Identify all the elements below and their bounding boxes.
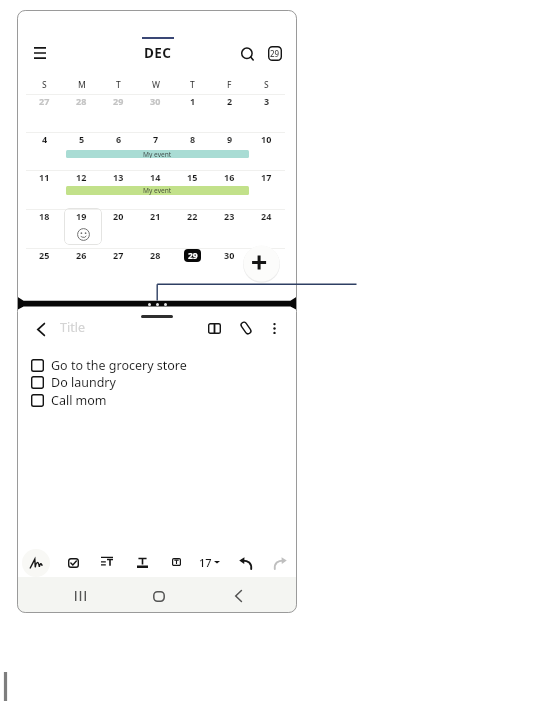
- staticText: 27: [113, 249, 124, 261]
- button[interactable]: My event: [66, 150, 249, 158]
- button[interactable]: Reading view: [201, 315, 227, 341]
- staticText: 30: [150, 95, 161, 107]
- button[interactable]: 4: [26, 131, 63, 147]
- button[interactable]: 26: [63, 247, 100, 263]
- button[interactable]: Go to today: [262, 40, 288, 66]
- staticText: 25: [39, 249, 50, 261]
- button[interactable]: 6: [100, 131, 137, 147]
- button[interactable]: 23: [211, 208, 248, 224]
- button[interactable]: Call mom: [31, 391, 107, 409]
- button[interactable]: Text box: [164, 550, 188, 574]
- staticText: M: [78, 79, 86, 91]
- button[interactable]: Redo: [268, 551, 292, 575]
- button[interactable]: Go to the grocery store: [31, 356, 187, 374]
- button[interactable]: More options: [263, 317, 285, 339]
- staticText: 21: [150, 210, 161, 222]
- staticText: My event: [143, 186, 172, 195]
- button[interactable]: 20: [100, 208, 137, 224]
- button[interactable]: 12: [63, 169, 100, 185]
- staticText: 8: [190, 133, 196, 145]
- staticText: T: [116, 79, 121, 91]
- button[interactable]: Do laundry: [31, 373, 116, 391]
- staticText: 29: [270, 48, 280, 59]
- staticText: Do laundry: [51, 374, 116, 391]
- staticText: 24: [261, 210, 272, 222]
- staticText: 29: [113, 95, 124, 107]
- staticText: 15: [187, 171, 198, 183]
- staticText: 3: [264, 95, 270, 107]
- staticText: 20: [113, 210, 124, 222]
- button[interactable]: 5: [63, 131, 100, 147]
- button[interactable]: 27: [100, 247, 137, 263]
- button[interactable]: Undo: [233, 551, 257, 575]
- button[interactable]: Menu: [25, 38, 55, 68]
- staticText: 2: [227, 95, 233, 107]
- button[interactable]: [64, 208, 102, 245]
- button[interactable]: Back: [223, 581, 253, 611]
- button[interactable]: 28: [63, 93, 100, 109]
- staticText: 29: [188, 250, 198, 262]
- staticText: 18: [39, 210, 50, 222]
- button[interactable]: 28: [137, 247, 174, 263]
- button[interactable]: Text style: [130, 550, 154, 574]
- button[interactable]: 11: [26, 169, 63, 185]
- button[interactable]: 13: [100, 169, 137, 185]
- button[interactable]: Pen: [22, 549, 50, 577]
- staticText: 17: [261, 171, 272, 183]
- button[interactable]: 29: [184, 249, 201, 262]
- button[interactable]: 2: [211, 93, 248, 109]
- button[interactable]: 1: [174, 93, 211, 109]
- button[interactable]: Add event: [243, 245, 280, 282]
- button[interactable]: 24: [248, 208, 285, 224]
- button[interactable]: 8: [174, 131, 211, 147]
- staticText: 30: [224, 249, 235, 261]
- button[interactable]: 17: [199, 552, 220, 572]
- button[interactable]: Search: [233, 40, 261, 68]
- button[interactable]: Back: [28, 316, 54, 342]
- staticText: 22: [187, 210, 198, 222]
- staticText: Call mom: [51, 392, 107, 409]
- staticText: 23: [224, 210, 235, 222]
- staticText: 19: [76, 210, 87, 222]
- staticText: 10: [261, 133, 272, 145]
- button[interactable]: 18: [26, 208, 63, 224]
- button[interactable]: 30: [137, 93, 174, 109]
- button[interactable]: Checklist: [61, 551, 85, 575]
- button[interactable]: 27: [26, 93, 63, 109]
- staticText: 11: [39, 171, 50, 183]
- staticText: 26: [76, 249, 87, 261]
- staticText: DEC: [144, 44, 172, 62]
- button[interactable]: 16: [211, 169, 248, 185]
- staticText: 6: [116, 133, 122, 145]
- staticText: 16: [224, 171, 235, 183]
- staticText: 7: [153, 133, 159, 145]
- button[interactable]: 14: [137, 169, 174, 185]
- button[interactable]: 3: [248, 93, 285, 109]
- button[interactable]: 22: [174, 208, 211, 224]
- button[interactable]: 25: [26, 247, 63, 263]
- button[interactable]: Recent apps: [65, 581, 95, 611]
- button[interactable]: 30: [211, 247, 248, 263]
- staticText: T: [190, 79, 195, 91]
- button[interactable]: 21: [137, 208, 174, 224]
- button[interactable]: My event: [66, 186, 249, 195]
- staticText: 17: [199, 555, 212, 570]
- button[interactable]: 29: [100, 93, 137, 109]
- button[interactable]: 17: [248, 169, 285, 185]
- button[interactable]: 9: [211, 131, 248, 147]
- staticText: 4: [42, 133, 48, 145]
- button[interactable]: 19: [63, 208, 100, 224]
- button[interactable]: 15: [174, 169, 211, 185]
- button[interactable]: Attach: [233, 315, 259, 341]
- staticText: F: [227, 79, 232, 91]
- staticText: 13: [113, 171, 124, 183]
- button[interactable]: 7: [137, 131, 174, 147]
- staticText: W: [152, 79, 160, 91]
- staticText: 27: [39, 95, 50, 107]
- staticText: 14: [150, 171, 161, 183]
- button[interactable]: Home: [144, 581, 174, 611]
- staticText: Go to the grocery store: [51, 357, 187, 374]
- button[interactable]: 10: [248, 131, 285, 147]
- staticText: Title: [60, 319, 85, 335]
- button[interactable]: Paragraph style: [95, 549, 119, 573]
